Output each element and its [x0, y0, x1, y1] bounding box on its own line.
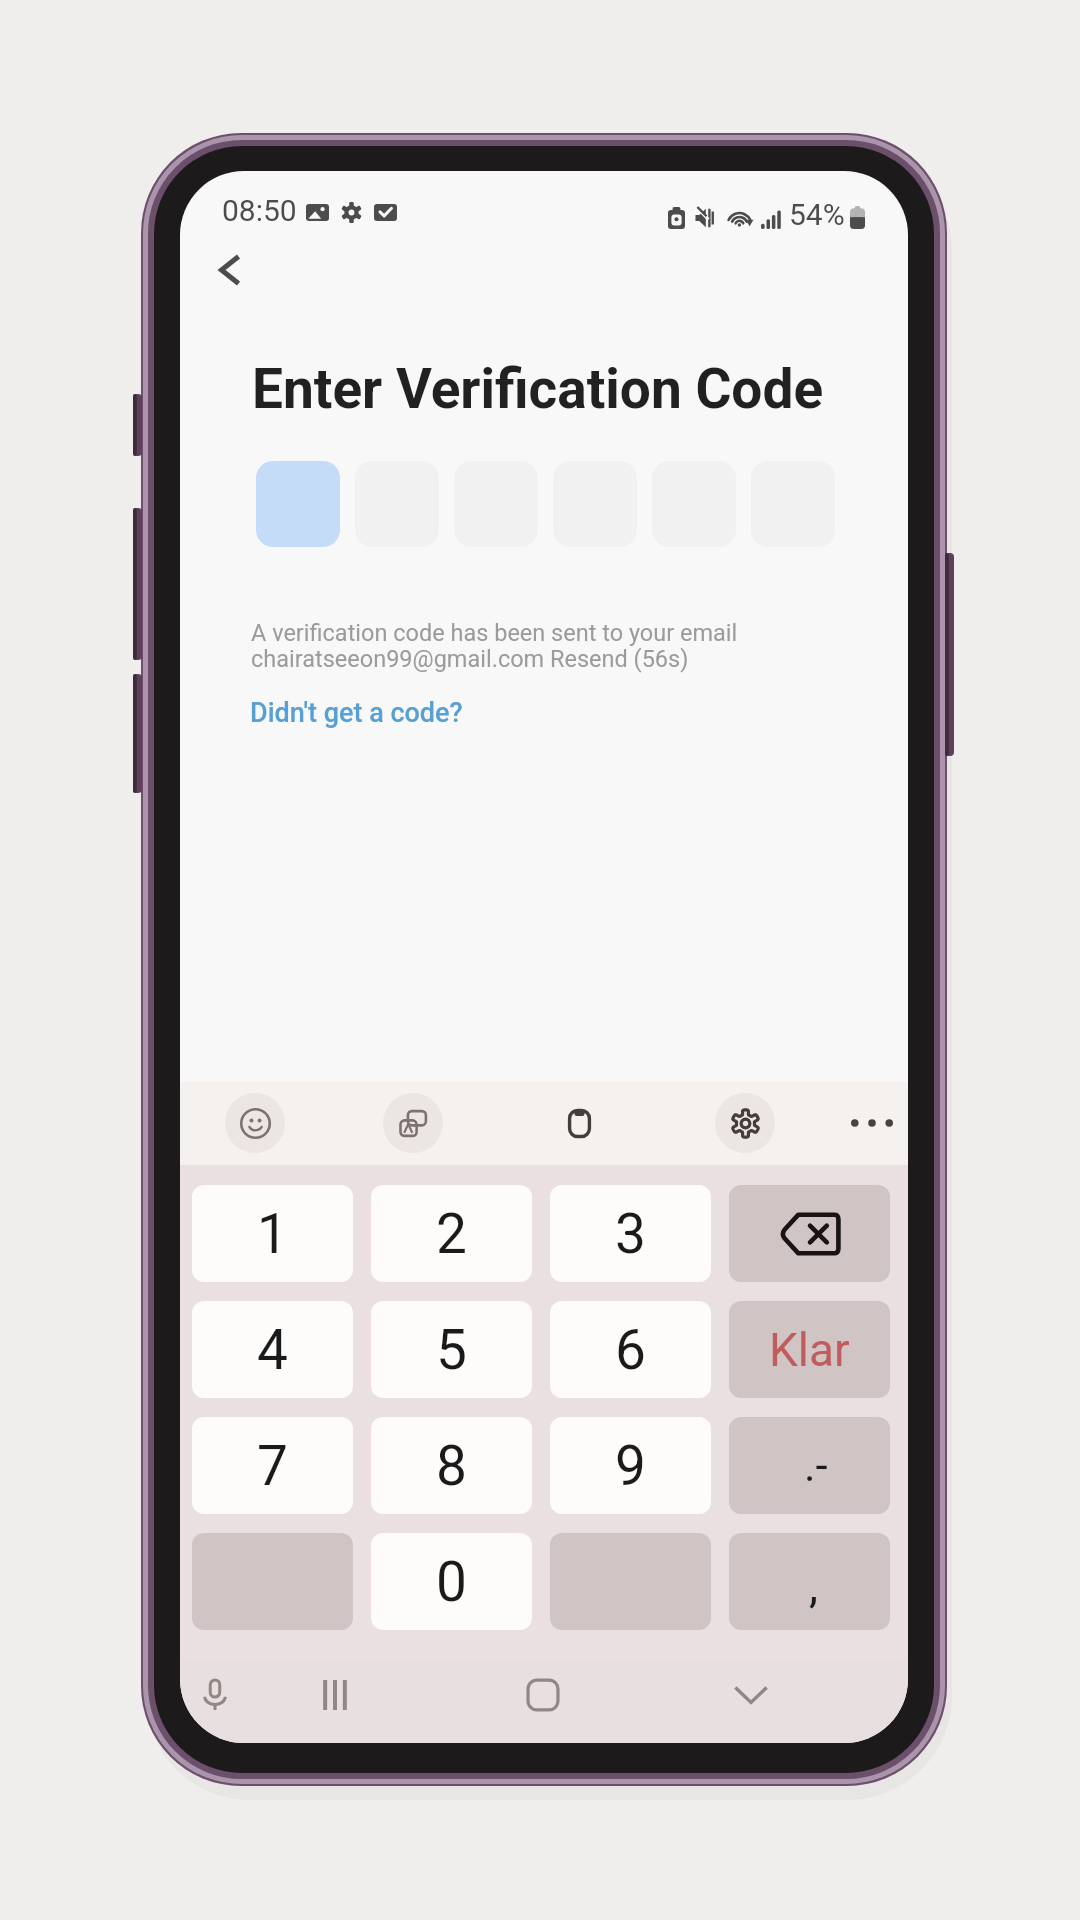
button[interactable]: Translate: [383, 1093, 443, 1153]
staticText: 8: [436, 1434, 467, 1498]
staticText: 2: [436, 1202, 467, 1266]
button[interactable]: Back: [191, 231, 269, 309]
button[interactable]: 2: [371, 1185, 532, 1282]
button[interactable]: Voice input: [183, 1663, 247, 1727]
button[interactable]: Clipboard: [549, 1093, 609, 1153]
staticText: Enter Verification Code: [252, 357, 824, 421]
staticText: A verification code has been sent to you…: [251, 619, 738, 672]
button[interactable]: Recents: [303, 1663, 367, 1727]
button[interactable]: ,: [729, 1533, 890, 1630]
staticText: 9: [615, 1434, 646, 1498]
staticText: 54%: [789, 197, 845, 232]
button[interactable]: 1: [192, 1185, 353, 1282]
button[interactable]: More options: [842, 1093, 902, 1153]
button[interactable]: 3: [550, 1185, 711, 1282]
staticText: 0: [436, 1550, 467, 1614]
button[interactable]: Klar: [729, 1301, 890, 1398]
button[interactable]: 0: [371, 1533, 532, 1630]
staticText: 4: [257, 1318, 288, 1382]
button[interactable]: Didn't get a code?: [250, 697, 463, 729]
button[interactable]: Settings: [715, 1093, 775, 1153]
button[interactable]: Backspace: [729, 1185, 890, 1282]
button[interactable]: 7: [192, 1417, 353, 1514]
button[interactable]: 5: [371, 1301, 532, 1398]
button[interactable]: Home: [511, 1663, 575, 1727]
staticText: Klar: [769, 1323, 850, 1377]
button[interactable]: Hide keyboard: [719, 1663, 783, 1727]
staticText: 1: [257, 1202, 288, 1266]
button[interactable]: Emoji: [225, 1093, 285, 1153]
button[interactable]: 6: [550, 1301, 711, 1398]
button[interactable]: Digit 1: [256, 461, 340, 547]
button[interactable]: 4: [192, 1301, 353, 1398]
staticText: 3: [615, 1202, 646, 1266]
button[interactable]: 9: [550, 1417, 711, 1514]
staticText: 5: [436, 1318, 467, 1382]
button[interactable]: .-: [729, 1417, 890, 1514]
staticText: Didn't get a code?: [250, 697, 463, 729]
button[interactable]: 8: [371, 1417, 532, 1514]
staticText: .-: [804, 1440, 828, 1492]
staticText: 6: [615, 1318, 646, 1382]
staticText: ,: [809, 1559, 819, 1613]
staticText: 7: [257, 1434, 288, 1498]
staticText: 08:50: [222, 193, 297, 228]
